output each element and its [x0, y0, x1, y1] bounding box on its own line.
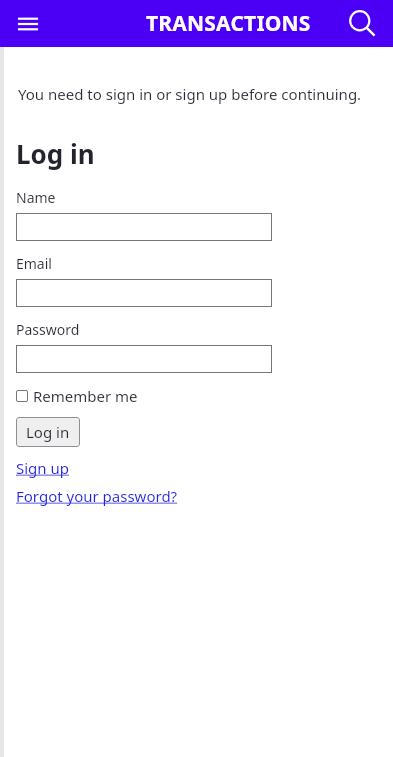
button[interactable]: Sign up [16, 458, 69, 478]
button[interactable]: Menu [8, 4, 48, 44]
button[interactable] [16, 345, 272, 373]
staticText: Forgot your password? [16, 486, 178, 506]
staticText: Name [16, 188, 56, 207]
button[interactable]: Forgot your password? [16, 486, 178, 506]
button[interactable]: Remember me [16, 386, 138, 406]
staticText: Email [16, 254, 52, 273]
staticText: You need to sign in or sign up before co… [18, 84, 362, 104]
button[interactable]: Search [341, 3, 383, 45]
staticText: Log in [26, 422, 70, 442]
staticText: Password [16, 320, 80, 339]
staticText: Remember me [33, 386, 138, 406]
staticText: TRANSACTIONS [146, 9, 311, 38]
button[interactable] [16, 213, 272, 241]
staticText: Sign up [16, 458, 69, 478]
button[interactable] [16, 279, 272, 307]
button[interactable]: Log in [16, 417, 80, 447]
staticText: Log in [16, 136, 95, 171]
